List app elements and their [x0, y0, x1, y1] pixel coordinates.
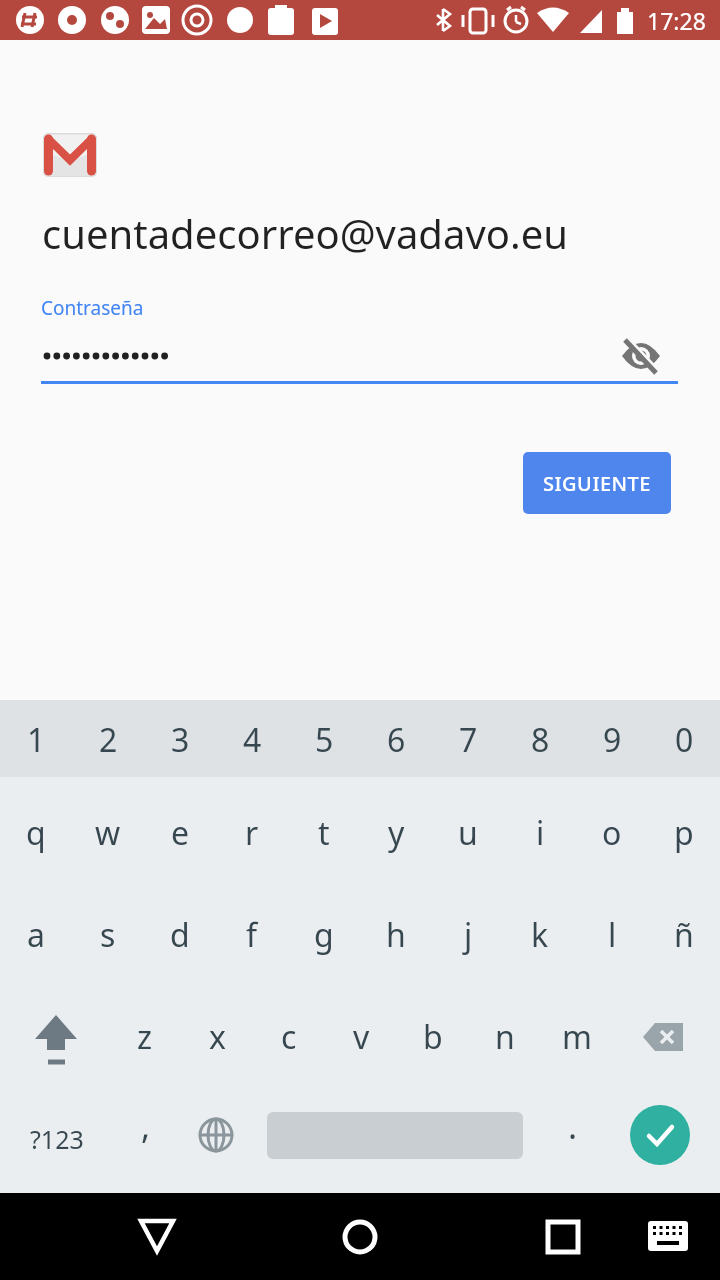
button[interactable] [630, 1105, 690, 1165]
button[interactable] [20, 1002, 90, 1072]
staticText: f [246, 913, 258, 957]
staticText: t [318, 811, 330, 855]
staticText: m [562, 1015, 592, 1059]
staticText: v [353, 1015, 370, 1059]
button[interactable]: j [434, 901, 502, 969]
button[interactable] [533, 1207, 593, 1267]
staticText: d [170, 913, 190, 957]
button[interactable]: ñ [650, 901, 718, 969]
staticText: SIGUIENTE [543, 470, 651, 497]
button[interactable] [127, 1207, 187, 1267]
staticText: 0 [675, 718, 694, 762]
staticText: 3 [171, 718, 190, 762]
staticText: r [245, 811, 259, 855]
button[interactable]: 4 [218, 706, 286, 774]
button[interactable]: 7 [434, 706, 502, 774]
button[interactable]: p [650, 799, 718, 867]
button[interactable]: ?123 [23, 1105, 91, 1173]
button[interactable]: c [255, 1003, 323, 1071]
staticText: cuentadecorreo@vadavo.eu [42, 206, 568, 260]
staticText: o [602, 811, 622, 855]
button[interactable]: 1 [2, 706, 70, 774]
staticText: 4 [243, 718, 262, 762]
staticText: k [531, 913, 549, 957]
button[interactable]: SIGUIENTE [523, 452, 671, 514]
staticText: q [26, 811, 46, 855]
button[interactable]: e [146, 799, 214, 867]
button[interactable] [625, 1002, 695, 1072]
staticText: z [137, 1015, 153, 1059]
button[interactable]: g [290, 901, 358, 969]
button[interactable]: k [506, 901, 574, 969]
button[interactable]: f [218, 901, 286, 969]
staticText: ?123 [30, 1122, 84, 1156]
staticText: c [281, 1015, 297, 1059]
button[interactable]: o [578, 799, 646, 867]
staticText: . [568, 1103, 578, 1149]
button[interactable]: 9 [578, 706, 646, 774]
button[interactable] [644, 1213, 692, 1261]
button[interactable]: a [2, 901, 70, 969]
staticText: , [141, 1103, 151, 1149]
staticText: 17:28 [647, 5, 706, 36]
staticText: l [608, 913, 617, 957]
button[interactable]: m [543, 1003, 611, 1071]
button[interactable] [186, 1105, 246, 1165]
button[interactable]: l [578, 901, 646, 969]
button[interactable]: s [74, 901, 142, 969]
button[interactable] [330, 1207, 390, 1267]
staticText: ñ [674, 913, 694, 957]
staticText: x [209, 1015, 226, 1059]
staticText: s [100, 913, 116, 957]
button[interactable]: h [362, 901, 430, 969]
staticText: h [386, 913, 406, 957]
staticText: Contraseña [41, 295, 144, 321]
staticText: w [95, 811, 121, 855]
staticText: 6 [387, 718, 406, 762]
button[interactable]: 2 [74, 706, 142, 774]
button[interactable]: i [506, 799, 574, 867]
staticText: 8 [531, 718, 550, 762]
button[interactable]: 6 [362, 706, 430, 774]
button[interactable]: x [183, 1003, 251, 1071]
button[interactable]: 0 [650, 706, 718, 774]
button[interactable]: 3 [146, 706, 214, 774]
button[interactable]: y [362, 799, 430, 867]
button[interactable]: b [399, 1003, 467, 1071]
staticText: j [464, 913, 473, 957]
button[interactable]: d [146, 901, 214, 969]
staticText: g [314, 913, 334, 957]
staticText: a [27, 913, 45, 957]
button[interactable]: . [539, 1092, 607, 1160]
button[interactable]: z [111, 1003, 179, 1071]
staticText: e [171, 811, 190, 855]
button[interactable]: 8 [506, 706, 574, 774]
staticText: 9 [603, 718, 622, 762]
button[interactable]: r [218, 799, 286, 867]
staticText: i [536, 811, 545, 855]
staticText: p [674, 811, 694, 855]
button[interactable]: w [74, 799, 142, 867]
staticText: y [388, 811, 405, 855]
button[interactable] [622, 338, 660, 374]
button[interactable]: v [327, 1003, 395, 1071]
button[interactable]: u [434, 799, 502, 867]
button[interactable]: q [2, 799, 70, 867]
staticText: b [423, 1015, 443, 1059]
button[interactable]: , [112, 1092, 180, 1160]
staticText: 7 [459, 718, 478, 762]
staticText: 1 [27, 718, 46, 762]
button[interactable]: n [471, 1003, 539, 1071]
staticText: u [458, 811, 478, 855]
button[interactable]: t [290, 799, 358, 867]
button[interactable]: 5 [290, 706, 358, 774]
staticText: 5 [315, 718, 334, 762]
staticText: 2 [99, 718, 118, 762]
staticText: n [495, 1015, 515, 1059]
